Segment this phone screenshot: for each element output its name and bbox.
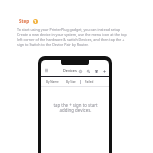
staticText: tap the + sign to start adding devices. (53, 102, 98, 114)
button[interactable]: By Name (46, 80, 59, 84)
staticText: Devices (63, 68, 77, 73)
button[interactable]: Sync (78, 69, 82, 73)
button[interactable]: Add (102, 69, 106, 73)
staticText: Failed (85, 80, 94, 84)
button[interactable]: Menu (44, 68, 49, 73)
staticText: To start using your PrinterPlug gadget, … (17, 27, 131, 47)
staticText: 1 (34, 19, 37, 24)
button[interactable]: Delete (94, 69, 98, 73)
staticText: By Name (46, 80, 59, 84)
button[interactable]: By Size (66, 80, 76, 84)
staticText: By Size (66, 80, 76, 84)
staticText: Step (19, 18, 30, 24)
button[interactable]: Failed (85, 80, 94, 84)
button[interactable]: Search (86, 69, 90, 73)
